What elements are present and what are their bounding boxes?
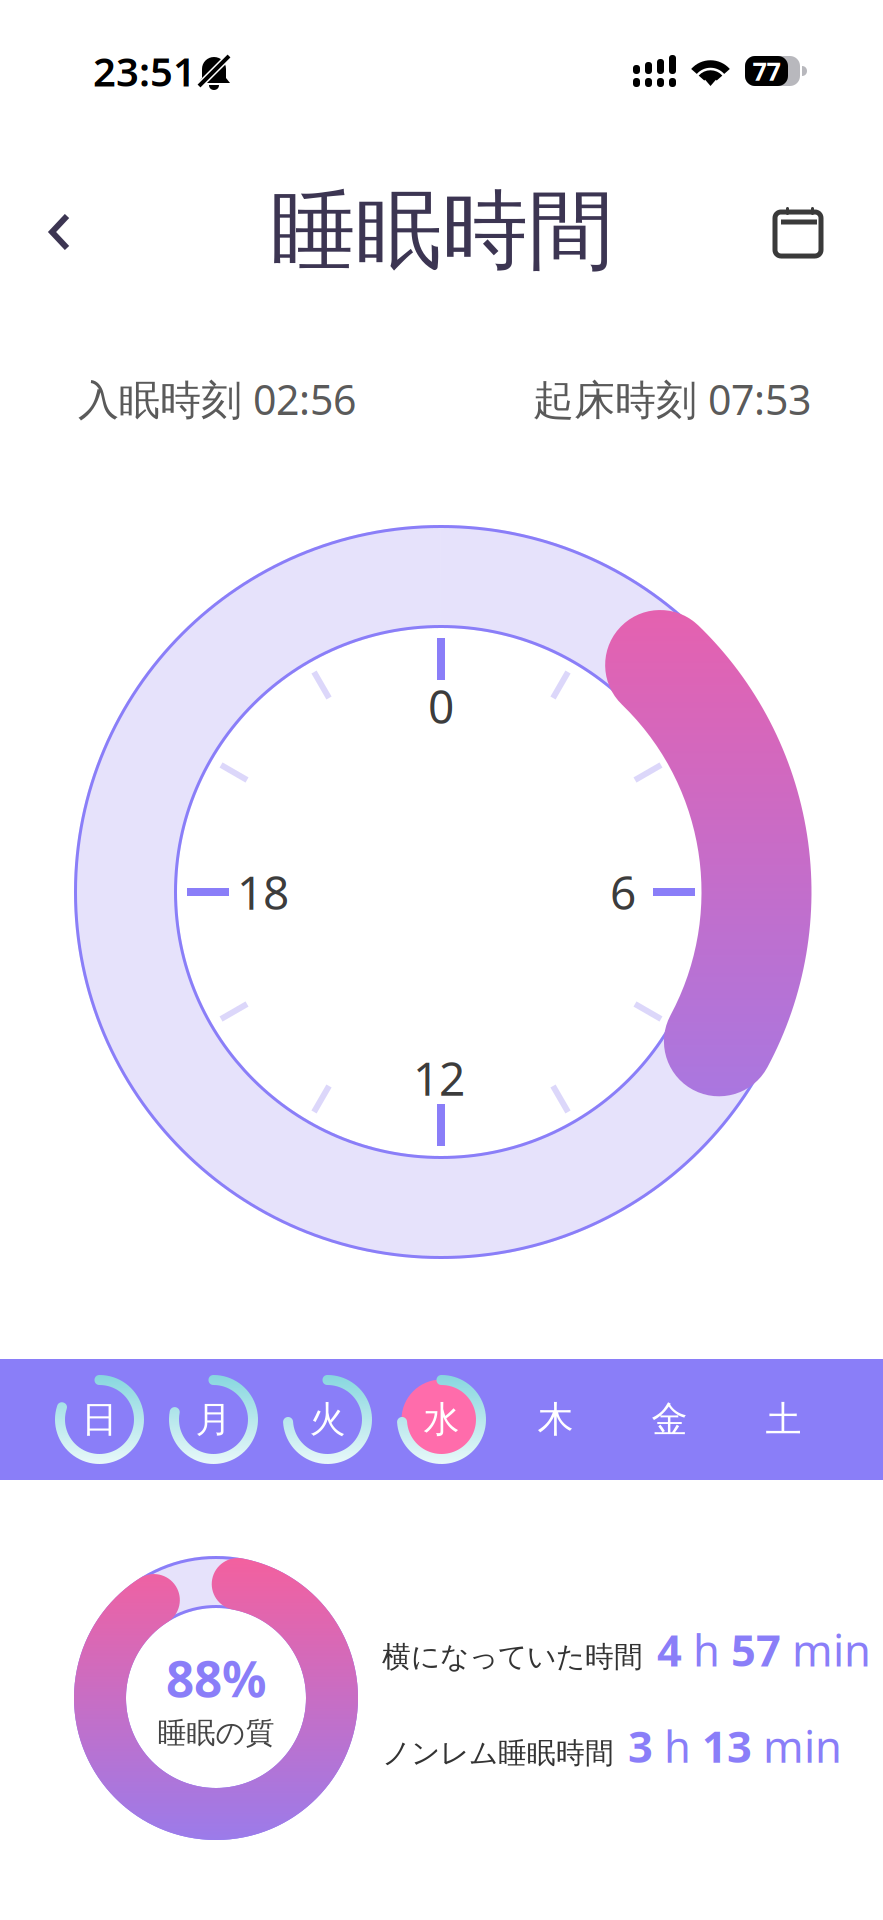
staticText: 金 [651,1397,687,1442]
staticText: 88% [166,1645,266,1712]
staticText: 月 [195,1397,231,1442]
staticText: 57 [731,1620,781,1679]
staticText: 77 [752,54,780,88]
staticText: 木 [537,1397,573,1442]
button[interactable]: 木 [498,1362,612,1476]
staticText: 6 [610,861,636,923]
button[interactable]: 土 [726,1362,840,1476]
staticText: 横になっていた時間 [382,1639,643,1675]
staticText: 12 [413,1047,465,1109]
button[interactable]: 金 [612,1362,726,1476]
button[interactable]: 日 [42,1362,156,1476]
staticText: h [653,1716,702,1775]
staticText: min [781,1620,871,1679]
staticText: h [682,1620,731,1679]
button[interactable]: 水 [384,1362,498,1476]
button[interactable]: Back [19,185,100,279]
staticText: 4 [657,1620,682,1679]
button[interactable]: Calendar [749,181,849,283]
staticText: 3 [628,1716,653,1775]
button[interactable]: 火 [270,1362,384,1476]
staticText: 23:51 [93,44,196,98]
staticText: 火 [309,1397,345,1442]
staticText: min [752,1716,842,1775]
staticText: ノンレム睡眠時間 [382,1735,614,1771]
staticText: 18 [237,861,289,923]
staticText: 0 [428,675,454,737]
staticText: 睡眠時間 [270,177,614,285]
button[interactable]: 月 [156,1362,270,1476]
staticText: 睡眠の質 [157,1715,274,1751]
staticText: 土 [765,1397,801,1442]
staticText: 入眠時刻 02:56 [78,371,356,427]
staticText: 起床時刻 07:53 [533,371,811,427]
staticText: 13 [702,1716,752,1775]
staticText: 水 [423,1397,459,1442]
staticText: 日 [81,1397,117,1442]
